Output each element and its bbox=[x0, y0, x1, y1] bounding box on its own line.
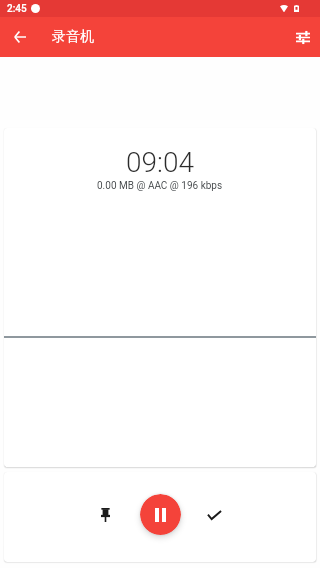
staticText: 09:04 bbox=[126, 146, 195, 179]
button[interactable]: Back bbox=[4, 21, 36, 53]
button[interactable]: Pause recording bbox=[140, 494, 181, 535]
button[interactable]: Finish recording bbox=[192, 493, 236, 537]
button[interactable]: Recording settings bbox=[287, 21, 319, 53]
staticText: 录音机 bbox=[52, 28, 94, 46]
button[interactable]: Pin recording bbox=[83, 493, 127, 537]
staticText: 2:45 bbox=[7, 3, 27, 15]
staticText: 0.00 MB @ AAC @ 196 kbps bbox=[97, 180, 223, 192]
